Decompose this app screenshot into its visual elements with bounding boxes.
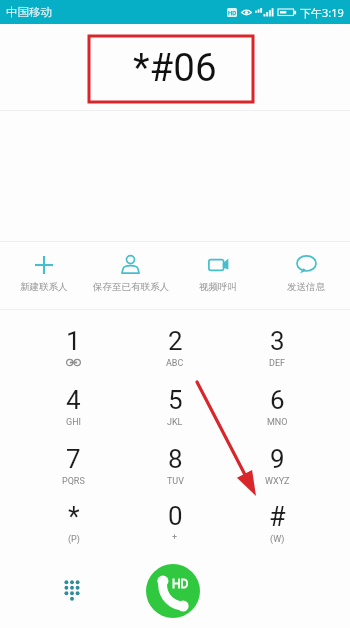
- staticText: WXYZ: [265, 476, 290, 486]
- staticText: 6: [270, 385, 285, 415]
- staticText: *#06: [133, 45, 217, 90]
- staticText: 2: [168, 326, 183, 356]
- button[interactable]: 6: [226, 368, 328, 427]
- staticText: +: [172, 532, 178, 543]
- staticText: JKL: [167, 417, 183, 427]
- staticText: 新建联系人: [20, 281, 68, 293]
- button[interactable]: 视频呼叫: [174, 242, 262, 309]
- staticText: 保存至已有联系人: [93, 281, 169, 293]
- staticText: TUV: [167, 476, 184, 486]
- button[interactable]: 4: [23, 368, 124, 427]
- button[interactable]: Dialpad: [57, 575, 87, 605]
- staticText: (P): [68, 534, 80, 544]
- staticText: DEF: [269, 358, 285, 368]
- staticText: 发送信息: [287, 281, 325, 293]
- button[interactable]: 7: [23, 427, 124, 486]
- staticText: 中国移动: [6, 5, 52, 19]
- button[interactable]: 2: [124, 309, 226, 368]
- button[interactable]: 8: [124, 427, 226, 486]
- staticText: *: [68, 501, 80, 533]
- staticText: ABC: [166, 358, 184, 368]
- staticText: 5: [168, 385, 183, 415]
- staticText: (W): [270, 534, 285, 544]
- button[interactable]: 保存至已有联系人: [87, 242, 174, 309]
- staticText: HD: [172, 577, 189, 591]
- staticText: 8: [168, 444, 183, 474]
- button[interactable]: Call: [146, 564, 200, 618]
- staticText: 1: [66, 326, 81, 356]
- staticText: 0: [168, 501, 183, 531]
- button[interactable]: 新建联系人: [0, 242, 87, 309]
- staticText: 3: [270, 326, 285, 356]
- button[interactable]: *: [23, 486, 124, 544]
- staticText: 下午3:19: [300, 5, 344, 20]
- staticText: MNO: [267, 417, 288, 427]
- button[interactable]: 发送信息: [262, 242, 350, 309]
- staticText: 视频呼叫: [199, 281, 237, 293]
- staticText: GHI: [66, 417, 81, 427]
- staticText: HD: [228, 9, 237, 16]
- staticText: 9: [270, 444, 285, 474]
- button[interactable]: 5: [124, 368, 226, 427]
- button[interactable]: 0: [124, 486, 226, 544]
- staticText: #: [269, 501, 286, 533]
- button[interactable]: 1: [23, 309, 124, 368]
- staticText: PQRS: [62, 476, 85, 486]
- staticText: 4: [66, 385, 81, 415]
- button[interactable]: 3: [226, 309, 328, 368]
- button[interactable]: 9: [226, 427, 328, 486]
- button[interactable]: #: [226, 486, 328, 544]
- staticText: 7: [66, 444, 81, 474]
